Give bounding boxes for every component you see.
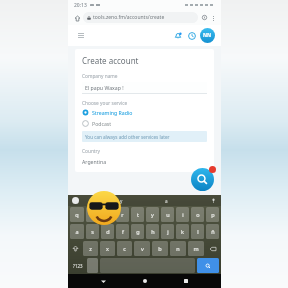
button[interactable]: Podcast [82,120,207,127]
button[interactable]: o [191,207,204,222]
staticText: Company name [82,73,118,80]
button[interactable]: s [86,224,99,239]
button[interactable]: p [206,207,219,222]
button[interactable]: More options [209,14,217,22]
button[interactable]: Emoji [72,197,79,204]
staticText: z [89,245,92,252]
staticText: t [137,211,139,218]
staticText: s [91,228,94,235]
button[interactable]: e [101,207,114,222]
button[interactable]: Page info [200,13,209,22]
button[interactable]: ñ [206,224,219,239]
staticText: u [166,211,170,218]
staticText: w [90,211,95,218]
button[interactable]: c [117,241,132,256]
staticText: NN [203,32,212,39]
staticText: a [165,198,168,204]
button[interactable]: d [101,224,114,239]
staticText: ñ [211,228,215,235]
staticText: 20:13 [74,2,87,9]
staticText: m [193,245,199,252]
staticText: l [197,228,199,235]
button[interactable]: Search [191,168,214,191]
staticText: h [151,228,155,235]
staticText: p [211,211,215,218]
button[interactable]: z [83,241,98,256]
button[interactable]: a [70,224,84,239]
button[interactable]: j [161,224,174,239]
button[interactable]: h [146,224,159,239]
button[interactable]: History [185,29,198,42]
button[interactable]: t [131,207,144,222]
button[interactable]: r [116,207,129,222]
staticText: i [182,211,184,218]
button[interactable]: k [176,224,189,239]
button[interactable]: v [134,241,150,256]
staticText: El papu Waxap ! [85,84,124,91]
button[interactable]: tools.zeno.fm/accounts/create [83,12,198,23]
button[interactable]: g [131,224,144,239]
button[interactable]: Emoji keyboard [87,258,98,273]
button[interactable]: Back [96,274,110,288]
button[interactable]: f [116,224,129,239]
staticText: k [181,228,184,235]
button[interactable]: n [170,241,186,256]
button[interactable]: u [161,207,174,222]
staticText: b [158,245,162,252]
staticText: Create account [82,55,139,66]
button[interactable]: q [70,207,84,222]
staticText: r [121,211,124,218]
staticText: y [151,211,154,218]
button[interactable]: You can always add other services later [82,131,207,142]
button[interactable]: l [191,224,204,239]
button[interactable]: y [146,207,159,222]
button[interactable]: i [176,207,189,222]
staticText: c [123,245,126,252]
staticText: e [106,211,110,218]
button[interactable]: x [100,241,115,256]
staticText: Argentina [82,158,107,165]
staticText: Streaming Radio [92,109,133,116]
button[interactable]: ?123 [69,257,86,274]
button[interactable]: Menu [74,29,87,42]
staticText: Country [82,148,101,155]
staticText: d [106,228,110,235]
staticText: j [167,228,169,235]
staticText: g [136,228,140,235]
staticText: y [120,198,123,204]
button[interactable]: b [152,241,168,256]
staticText: Choose your service [82,100,128,107]
button[interactable]: m [188,241,204,256]
button[interactable]: El papu Waxap ! [82,82,207,93]
button[interactable]: Home [138,274,152,288]
staticText: x [106,245,109,252]
staticText: Podcast [92,120,112,127]
staticText: tools.zeno.fm/accounts/create [93,14,165,21]
staticText: f [122,228,124,235]
staticText: a [75,228,79,235]
button[interactable]: Argentina [82,157,207,166]
staticText: o [196,211,200,218]
button[interactable]: Search [197,258,219,273]
button[interactable]: Shift [69,240,82,257]
staticText: q [75,211,79,218]
button[interactable]: Home [72,13,82,23]
button[interactable]: w [86,207,99,222]
button[interactable]: Recents [179,274,193,288]
staticText: You can always add other services later [85,134,170,140]
staticText: n [176,245,180,252]
button[interactable]: Voice input [210,197,217,204]
staticText: ?123 [73,263,83,269]
button[interactable]: Backspace [205,240,220,257]
button[interactable]: Account [200,28,215,43]
staticText: v [141,245,144,252]
button[interactable]: Streaming Radio [82,109,207,116]
button[interactable]: Notifications [171,29,184,42]
